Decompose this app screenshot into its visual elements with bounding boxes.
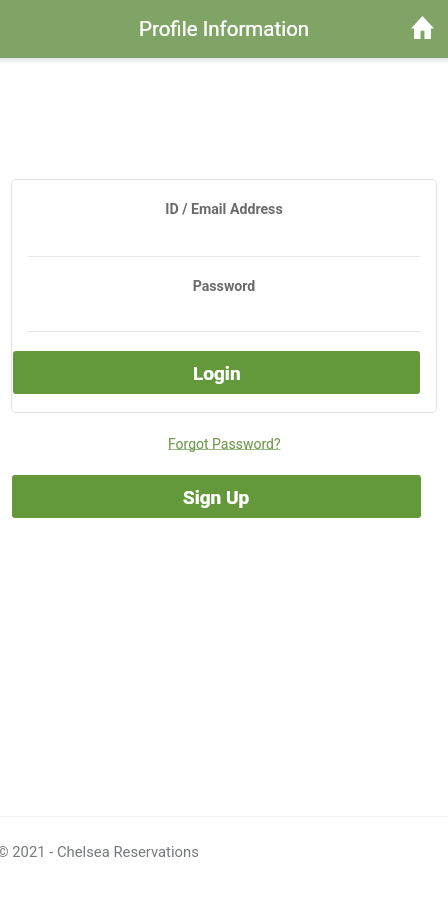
staticText: Profile Information xyxy=(139,17,310,41)
staticText: Sign Up xyxy=(183,486,250,508)
button[interactable]: Login xyxy=(13,351,420,394)
staticText: Password xyxy=(11,278,437,295)
button[interactable]: Forgot Password? xyxy=(162,430,287,458)
button[interactable]: Home xyxy=(400,7,444,51)
staticText: ID / Email Address xyxy=(11,201,437,218)
staticText: Forgot Password? xyxy=(168,436,281,452)
button[interactable]: Sign Up xyxy=(12,475,421,518)
staticText: Login xyxy=(193,362,241,384)
staticText: © 2021 - Chelsea Reservations xyxy=(0,843,199,860)
